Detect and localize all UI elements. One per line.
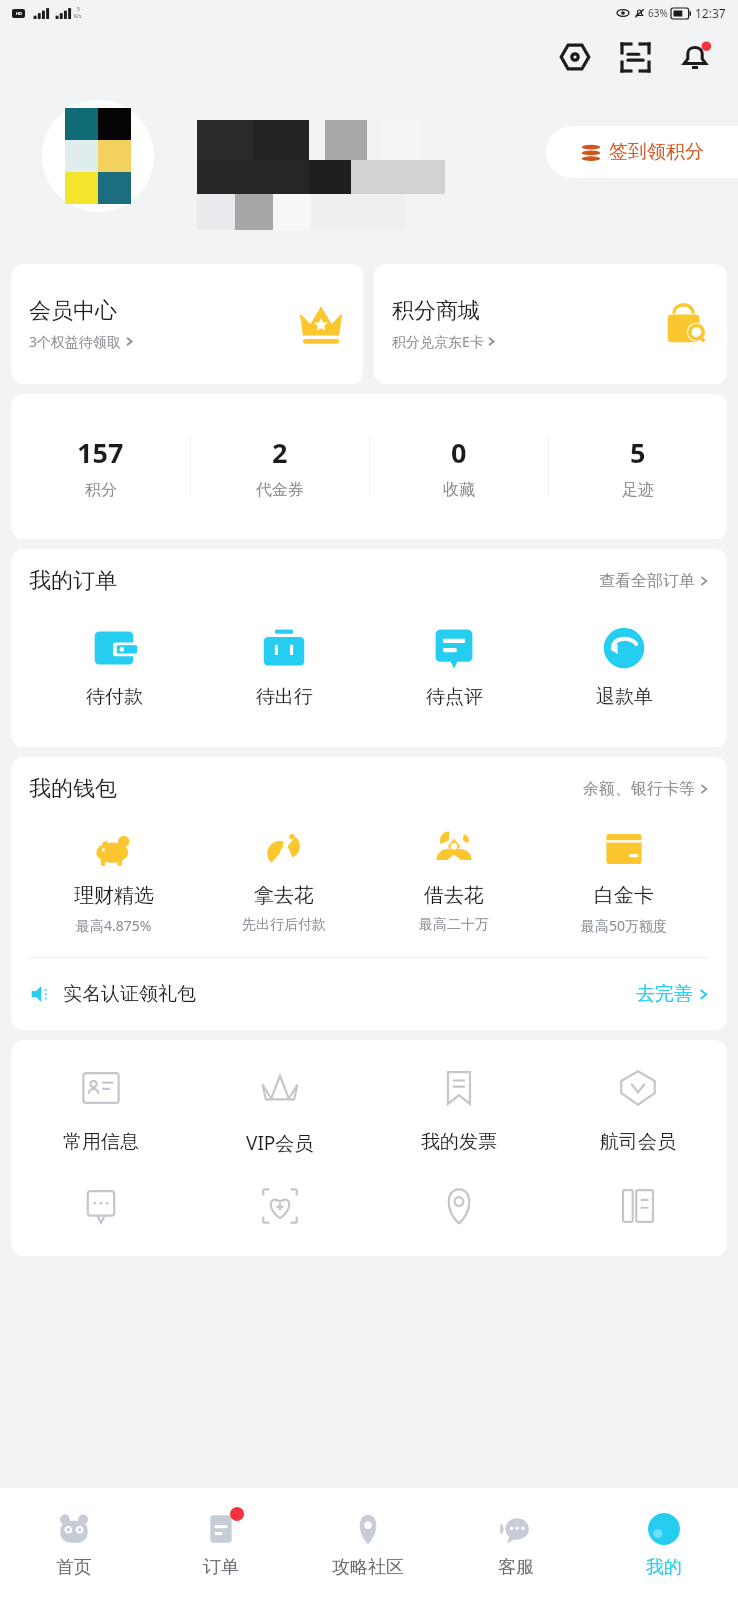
button[interactable]: 我的发票	[369, 1066, 548, 1154]
staticText: 常用信息	[63, 1130, 139, 1154]
staticText: 157	[77, 434, 124, 471]
staticText: 我的发票	[421, 1130, 497, 1154]
staticText: 退款单	[596, 685, 653, 709]
staticText: 会员中心	[29, 297, 117, 325]
button[interactable]: 实名认证领礼包	[11, 958, 727, 1030]
staticText: 收藏	[443, 480, 475, 500]
staticText: 理财精选	[74, 883, 154, 908]
staticText: 待点评	[426, 685, 483, 709]
button[interactable]: 我的订单	[29, 567, 709, 595]
button[interactable]: 待出行	[199, 625, 369, 709]
staticText: 我的	[646, 1556, 682, 1579]
staticText: 余额、银行卡等	[583, 779, 695, 799]
button[interactable]: Shortcut	[369, 1184, 548, 1228]
button[interactable]: Avatar	[42, 100, 154, 212]
staticText: 12:37	[695, 5, 726, 21]
staticText: 5	[77, 6, 80, 13]
button[interactable]: 攻略社区	[294, 1488, 442, 1600]
button[interactable]: 积分商城	[374, 264, 727, 384]
button[interactable]: Scan	[612, 34, 658, 80]
button[interactable]: 157	[11, 394, 190, 539]
staticText: 签到领积分	[609, 140, 704, 164]
button[interactable]: 客服	[442, 1488, 590, 1600]
staticText: 去完善	[636, 982, 693, 1006]
button[interactable]: 会员中心	[11, 264, 363, 384]
button[interactable]: 待付款	[29, 625, 199, 709]
button[interactable]: 退款单	[539, 625, 709, 709]
staticText: 积分	[85, 480, 117, 500]
staticText: 待出行	[256, 685, 313, 709]
button[interactable]: 航司会员	[548, 1066, 727, 1154]
staticText: 订单	[203, 1556, 239, 1579]
staticText: K/s	[74, 13, 82, 20]
button[interactable]: Notifications	[672, 34, 718, 80]
staticText: 2	[272, 434, 288, 471]
staticText: 攻略社区	[332, 1556, 404, 1579]
staticText: 0	[451, 434, 467, 471]
staticText: 5	[630, 434, 646, 471]
staticText: VIP会员	[246, 1130, 314, 1156]
staticText: 航司会员	[600, 1130, 676, 1154]
staticText: 积分兑京东E卡	[392, 332, 484, 351]
button[interactable]: 我的钱包	[29, 775, 709, 803]
staticText: 查看全部订单	[599, 571, 695, 591]
button[interactable]: 常用信息	[11, 1066, 190, 1154]
staticText: HD	[16, 11, 22, 16]
button[interactable]: Settings	[552, 34, 598, 80]
button[interactable]: 拿去花	[199, 827, 369, 934]
button[interactable]: 白金卡	[539, 827, 709, 935]
button[interactable]: 理财精选	[29, 827, 199, 935]
staticText: 实名认证领礼包	[63, 982, 636, 1006]
staticText: 我的订单	[29, 567, 599, 595]
button[interactable]: 我的	[590, 1488, 738, 1600]
staticText: 积分商城	[392, 297, 480, 325]
button[interactable]: 5	[549, 394, 727, 539]
staticText: 首页	[56, 1556, 92, 1579]
button[interactable]: 首页	[0, 1488, 147, 1600]
button[interactable]: 订单	[147, 1488, 294, 1600]
staticText: 拿去花	[254, 883, 314, 908]
button[interactable]: Shortcut	[11, 1184, 190, 1228]
staticText: 借去花	[424, 883, 484, 908]
button[interactable]: 0	[370, 394, 548, 539]
staticText: 先出行后付款	[242, 916, 326, 934]
button[interactable]: 2	[191, 394, 369, 539]
staticText: 客服	[498, 1556, 534, 1579]
staticText: 待付款	[86, 685, 143, 709]
button[interactable]: VIP会员	[190, 1066, 369, 1156]
staticText: 最高50万额度	[581, 916, 668, 935]
staticText: 白金卡	[594, 883, 654, 908]
button[interactable]: 待点评	[369, 625, 539, 709]
staticText: 最高二十万	[419, 916, 489, 934]
button[interactable]: 借去花	[369, 827, 539, 934]
staticText: 我的钱包	[29, 775, 583, 803]
button[interactable]: 签到领积分	[546, 126, 738, 178]
staticText: 63%	[648, 6, 668, 20]
button[interactable]: Shortcut	[548, 1184, 727, 1228]
button[interactable]: Shortcut	[190, 1184, 369, 1228]
staticText: 代金券	[256, 480, 304, 500]
staticText: 最高4.875%	[76, 916, 152, 935]
staticText: 足迹	[622, 480, 654, 500]
staticText: 3个权益待领取	[29, 332, 122, 351]
